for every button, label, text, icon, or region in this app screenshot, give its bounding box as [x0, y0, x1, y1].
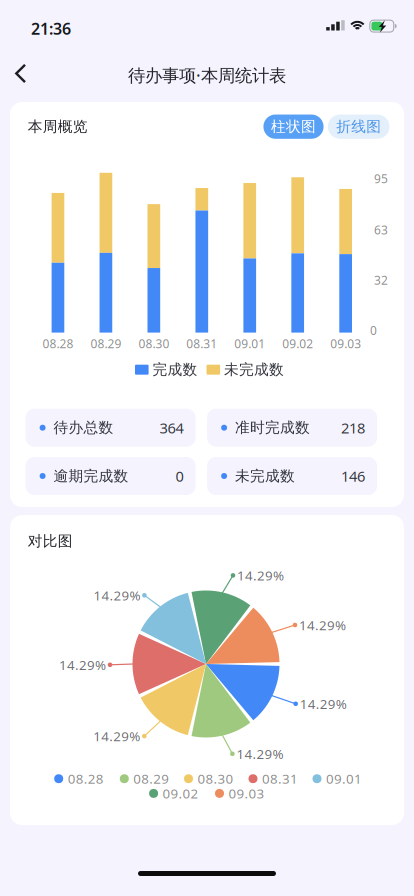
staticText: 14.29%: [236, 745, 283, 763]
button[interactable]: 折线图: [328, 114, 389, 139]
staticText: 146: [341, 466, 365, 486]
staticText: 对比图: [28, 532, 73, 550]
staticText: 0: [176, 466, 184, 486]
staticText: 未完成数: [224, 361, 284, 379]
button[interactable]: 未完成数: [207, 457, 377, 495]
staticText: 本周概览: [28, 118, 88, 136]
staticText: 09.02: [282, 336, 313, 352]
staticText: 09.03: [330, 336, 361, 352]
staticText: 08.31: [186, 336, 217, 352]
staticText: 08.30: [138, 336, 169, 352]
button[interactable]: 待办总数: [26, 409, 196, 447]
staticText: 0: [370, 322, 377, 338]
staticText: 08.29: [133, 770, 169, 787]
staticText: 364: [160, 418, 184, 437]
staticText: 218: [341, 418, 365, 437]
staticText: 21:36: [31, 18, 71, 39]
button[interactable]: 准时完成数: [207, 409, 377, 447]
staticText: 09.01: [326, 770, 362, 787]
staticText: 08.28: [42, 336, 73, 352]
staticText: 09.03: [228, 784, 264, 802]
staticText: 14.29%: [299, 616, 346, 634]
staticText: 待办总数: [54, 419, 114, 437]
staticText: 准时完成数: [235, 419, 310, 437]
staticText: 08.28: [68, 770, 104, 787]
staticText: 14.29%: [300, 695, 347, 713]
staticText: 14.29%: [93, 586, 140, 604]
staticText: 待办事项·本周统计表: [128, 63, 286, 86]
staticText: 14.29%: [237, 566, 284, 584]
staticText: 完成数: [152, 361, 197, 379]
staticText: 08.31: [262, 770, 298, 787]
staticText: 95: [374, 170, 388, 186]
staticText: 未完成数: [235, 467, 295, 485]
button[interactable]: 逾期完成数: [26, 457, 196, 495]
staticText: 14.29%: [93, 727, 140, 745]
staticText: 折线图: [336, 118, 381, 136]
staticText: 08.29: [90, 336, 121, 352]
staticText: 09.01: [234, 336, 265, 352]
button[interactable]: Back: [0, 55, 39, 95]
staticText: 32: [374, 272, 388, 288]
staticText: 柱状图: [271, 118, 316, 136]
staticText: 14.29%: [59, 656, 106, 674]
staticText: 逾期完成数: [54, 467, 129, 485]
staticText: 08.30: [197, 770, 233, 787]
staticText: 63: [374, 222, 388, 238]
button[interactable]: 柱状图: [263, 114, 324, 139]
staticText: 09.02: [163, 784, 199, 802]
